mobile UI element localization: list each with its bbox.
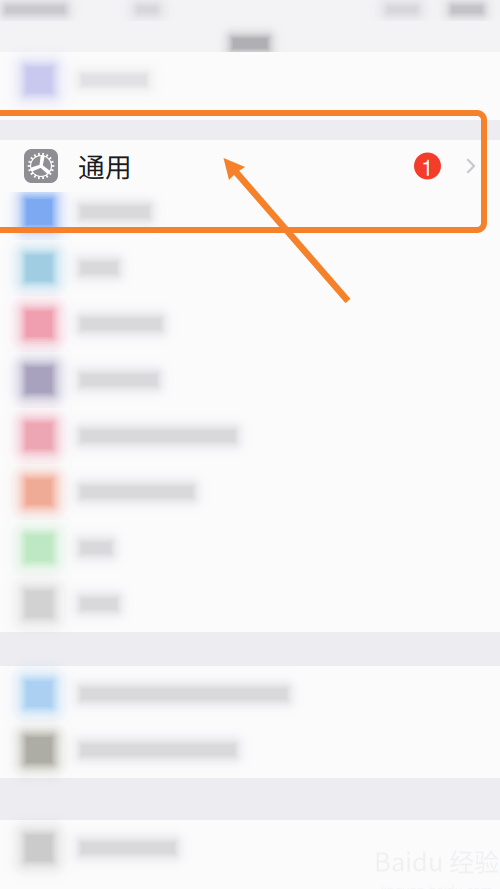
button[interactable] <box>0 666 500 722</box>
button[interactable] <box>0 576 500 632</box>
staticText: 通用 <box>78 146 132 185</box>
button[interactable] <box>0 464 500 520</box>
button[interactable]: 通用 <box>0 140 500 192</box>
button[interactable] <box>0 296 500 352</box>
button[interactable] <box>0 520 500 576</box>
staticText: Baidu 经验 <box>374 842 499 879</box>
button[interactable] <box>0 52 500 108</box>
button[interactable] <box>0 352 500 408</box>
staticText: 1 <box>421 150 434 182</box>
button[interactable] <box>0 240 500 296</box>
button[interactable] <box>0 820 500 876</box>
button[interactable] <box>0 184 500 240</box>
button[interactable] <box>0 722 500 778</box>
button[interactable] <box>0 408 500 464</box>
